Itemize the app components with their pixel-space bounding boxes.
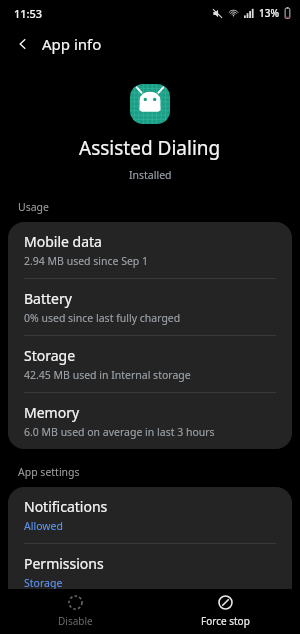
button[interactable]: Notifications <box>8 487 292 543</box>
button[interactable]: Back <box>8 29 38 59</box>
staticText: Force stop <box>201 614 250 628</box>
staticText: Disable <box>58 614 93 628</box>
staticText: Battery <box>24 289 72 308</box>
staticText: 2.94 MB used since Sep 1 <box>24 254 149 268</box>
button[interactable]: Storage <box>8 336 292 392</box>
button[interactable]: Permissions <box>8 544 292 600</box>
staticText: 6.0 MB used on average in last 3 hours <box>24 425 215 439</box>
staticText: Allowed <box>24 519 63 533</box>
staticText: 11:53 <box>14 6 43 21</box>
staticText: Storage <box>24 346 76 365</box>
button[interactable]: Force stop <box>150 591 300 632</box>
staticText: App settings <box>18 465 80 479</box>
button[interactable]: Battery <box>8 279 292 335</box>
staticText: 13% <box>259 6 279 20</box>
staticText: Mobile data <box>24 232 102 251</box>
staticText: App info <box>42 34 102 54</box>
staticText: Usage <box>18 200 49 214</box>
button[interactable]: Set as default <box>8 601 292 634</box>
staticText: Storage <box>24 576 63 590</box>
button[interactable]: Memory <box>8 393 292 449</box>
staticText: Assisted Dialing <box>79 135 221 161</box>
staticText: Installed <box>129 168 172 182</box>
button[interactable]: Disable <box>0 591 150 632</box>
staticText: Notifications <box>24 497 108 516</box>
staticText: Permissions <box>24 554 104 573</box>
staticText: Set as default <box>24 611 113 624</box>
staticText: Memory <box>24 403 80 422</box>
staticText: 0% used since last fully charged <box>24 311 181 325</box>
staticText: 42.45 MB used in Internal storage <box>24 368 191 382</box>
button[interactable]: Mobile data <box>8 222 292 278</box>
